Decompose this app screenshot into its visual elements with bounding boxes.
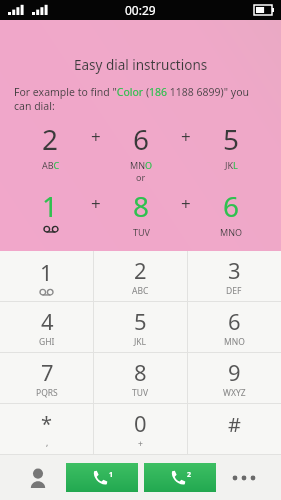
staticText: 9	[228, 357, 241, 387]
staticText: TUV	[132, 387, 149, 399]
button[interactable]: 7	[0, 353, 93, 403]
staticText: 00:29	[125, 2, 156, 18]
button[interactable]: 3	[187, 251, 281, 301]
staticText: MNO	[130, 159, 153, 171]
staticText: 6	[133, 120, 150, 158]
staticText: ,	[46, 437, 49, 449]
staticText: 7	[41, 357, 54, 387]
staticText: TUV	[133, 226, 150, 238]
staticText: or	[136, 171, 146, 183]
staticText: 2	[42, 120, 59, 158]
staticText: 1	[109, 470, 114, 480]
button[interactable]: Call with SIM 1	[66, 463, 138, 492]
staticText: MNO	[224, 336, 245, 348]
staticText: Easy dial instructions	[74, 56, 208, 74]
button[interactable]: 9	[187, 353, 281, 403]
staticText: +	[181, 125, 191, 148]
button[interactable]: #	[187, 404, 281, 454]
staticText: +	[91, 192, 101, 215]
staticText: JKL	[225, 159, 238, 171]
button[interactable]: 8	[93, 353, 187, 403]
button[interactable]: 5	[93, 302, 187, 352]
button[interactable]: 1	[0, 251, 93, 301]
staticText: 6	[228, 306, 241, 336]
button[interactable]: 6	[187, 302, 281, 352]
staticText: #	[228, 411, 241, 438]
staticText: 1	[42, 187, 59, 225]
button[interactable]: 0	[93, 404, 187, 454]
staticText: PQRS	[36, 387, 58, 399]
staticText: WXYZ	[223, 387, 246, 399]
button[interactable]: 2	[93, 251, 187, 301]
staticText: ABC	[132, 285, 149, 297]
staticText: 5	[223, 120, 240, 158]
staticText: JKL	[134, 336, 147, 348]
staticText: For example to find "Color (186 1188 689…	[14, 85, 267, 113]
staticText: 2	[134, 255, 147, 285]
staticText: 4	[41, 306, 54, 336]
staticText: DEF	[226, 285, 242, 297]
staticText: 2	[187, 470, 192, 480]
staticText: MNO	[220, 226, 243, 238]
button[interactable]: Contacts	[10, 455, 66, 500]
staticText: 3	[228, 255, 241, 285]
button[interactable]: 4	[0, 302, 93, 352]
button[interactable]: Call with SIM 2	[144, 463, 216, 492]
staticText: GHI	[39, 336, 55, 348]
staticText: +	[138, 438, 143, 450]
button[interactable]: *	[0, 404, 93, 454]
staticText: +	[181, 192, 191, 215]
staticText: 8	[133, 187, 150, 225]
staticText: 5	[134, 306, 147, 336]
staticText: 6	[223, 187, 240, 225]
staticText: 8	[134, 357, 147, 387]
staticText: ABC	[42, 159, 60, 171]
button[interactable]: More options	[216, 455, 271, 500]
staticText: +	[91, 125, 101, 148]
staticText: 0	[134, 408, 147, 438]
staticText: 1	[40, 257, 53, 287]
staticText: *	[41, 410, 53, 437]
